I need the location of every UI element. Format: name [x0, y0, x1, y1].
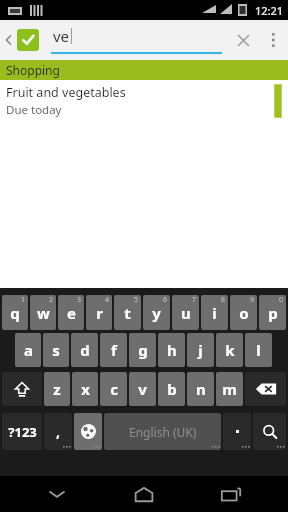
staticText: n	[196, 379, 206, 399]
staticText: Fruit and vegetables	[6, 84, 126, 101]
staticText: m	[222, 379, 237, 399]
staticText: 2	[49, 295, 54, 305]
staticText: ,	[56, 422, 60, 441]
staticText: 0	[279, 295, 284, 305]
button[interactable]: Navigate up	[0, 29, 41, 51]
staticText: p	[268, 303, 278, 323]
button[interactable]: k	[216, 333, 243, 367]
button[interactable]: Recent apps	[201, 476, 261, 512]
button[interactable]: Hide keyboard	[27, 476, 87, 512]
staticText: s	[52, 340, 60, 360]
staticText: t	[124, 303, 131, 323]
button[interactable]: c	[100, 372, 127, 406]
button[interactable]: n	[187, 372, 214, 406]
staticText: 7	[192, 295, 197, 305]
staticText: v	[138, 379, 147, 399]
staticText: 12:21	[255, 3, 284, 18]
staticText: 1	[21, 295, 26, 305]
staticText: q	[10, 303, 20, 323]
staticText: j	[198, 340, 203, 360]
button[interactable]: Shopping	[0, 60, 288, 80]
button[interactable]: Clear search	[226, 20, 260, 60]
button[interactable]: More options	[260, 20, 286, 60]
staticText: English (UK)	[129, 424, 197, 440]
staticText: h	[167, 340, 177, 360]
staticText: e	[67, 303, 76, 323]
button[interactable]: h	[158, 333, 185, 367]
staticText: x	[81, 379, 90, 399]
button[interactable]: e	[58, 295, 84, 330]
button[interactable]: o	[230, 295, 257, 330]
button[interactable]: z	[44, 372, 70, 406]
button[interactable]: Search	[253, 413, 286, 450]
button[interactable]: Fruit and vegetables	[0, 80, 288, 122]
button[interactable]: Change keyboard language	[74, 413, 102, 450]
staticText: 3	[77, 295, 82, 305]
staticText: 4	[105, 295, 110, 305]
staticText: 5	[134, 295, 139, 305]
button[interactable]: g	[129, 333, 156, 367]
staticText: w	[37, 303, 50, 323]
button[interactable]: ?123	[2, 413, 42, 450]
button[interactable]: s	[43, 333, 69, 367]
button[interactable]: a	[15, 333, 41, 367]
staticText: o	[239, 303, 249, 323]
staticText: i	[212, 303, 217, 323]
staticText: f	[111, 340, 117, 360]
staticText: b	[167, 379, 177, 399]
staticText: ?123	[8, 423, 37, 441]
staticText: g	[138, 340, 148, 360]
button[interactable]: v	[129, 372, 156, 406]
staticText: z	[53, 379, 61, 399]
button[interactable]: Period	[223, 413, 251, 450]
button[interactable]: u	[172, 295, 199, 330]
button[interactable]: p	[259, 295, 286, 330]
button[interactable]: j	[187, 333, 214, 367]
staticText: a	[24, 340, 33, 360]
button[interactable]: i	[201, 295, 228, 330]
button[interactable]: Shift	[2, 372, 42, 406]
button[interactable]: t	[114, 295, 141, 330]
button[interactable]: f	[100, 333, 127, 367]
button[interactable]: b	[158, 372, 185, 406]
button[interactable]: l	[245, 333, 272, 367]
staticText: y	[152, 303, 161, 323]
button[interactable]: Home	[114, 476, 174, 512]
staticText: 8	[221, 295, 226, 305]
button[interactable]: q	[2, 295, 28, 330]
button[interactable]: r	[86, 295, 112, 330]
button[interactable]: m	[216, 372, 243, 406]
staticText: l	[256, 340, 261, 360]
staticText: r	[96, 303, 103, 323]
staticText: d	[80, 340, 90, 360]
button[interactable]: Comma	[44, 413, 72, 450]
staticText: Due today	[6, 102, 62, 118]
button[interactable]: w	[30, 295, 56, 330]
staticText: c	[110, 379, 118, 399]
button[interactable]: d	[71, 333, 98, 367]
staticText: Shopping	[6, 62, 60, 78]
button[interactable]: y	[143, 295, 170, 330]
button[interactable]: ve	[41, 20, 226, 60]
staticText: k	[225, 340, 235, 360]
staticText: 6	[163, 295, 168, 305]
button[interactable]: English (UK)	[104, 413, 221, 450]
staticText: u	[181, 303, 191, 323]
staticText: 9	[250, 295, 255, 305]
staticText: ve	[53, 26, 70, 46]
button[interactable]: Backspace	[245, 372, 286, 406]
button[interactable]: x	[72, 372, 98, 406]
